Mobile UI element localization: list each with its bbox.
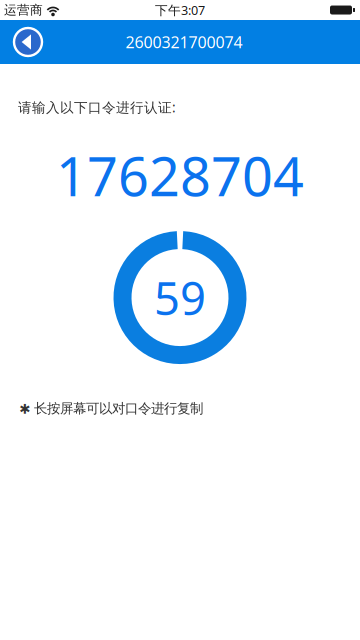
- staticText: ✱ 长按屏幕可以对口令进行复制: [19, 400, 203, 417]
- staticText: 17628704: [56, 138, 304, 212]
- staticText: 2600321700074: [125, 31, 242, 53]
- staticText: 下午3:07: [155, 1, 205, 19]
- staticText: 请输入以下口令进行认证:: [18, 98, 176, 116]
- button[interactable]: Back: [0, 20, 63, 64]
- staticText: 运营商: [4, 2, 43, 18]
- staticText: 59: [154, 267, 206, 328]
